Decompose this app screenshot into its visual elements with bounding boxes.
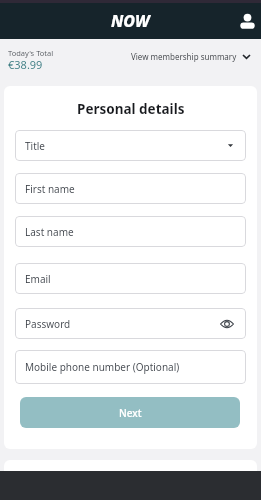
button[interactable]: Mobile phone number (Optional) xyxy=(15,350,246,384)
staticText: €38.99 xyxy=(8,57,43,72)
staticText: View membership summary xyxy=(131,51,237,62)
staticText: Password xyxy=(25,317,71,331)
button[interactable] xyxy=(239,12,255,28)
button[interactable]: Password xyxy=(15,308,246,339)
staticText: Email xyxy=(25,272,51,286)
button[interactable]: Last name xyxy=(15,216,246,247)
staticText: First name xyxy=(25,182,75,196)
button[interactable]: Email xyxy=(15,263,246,294)
button[interactable]: Title xyxy=(15,130,246,161)
button[interactable]: View membership summary xyxy=(131,51,251,62)
staticText: Today's Total xyxy=(8,48,54,58)
staticText: Next xyxy=(119,406,142,420)
staticText: NOW xyxy=(111,10,150,32)
button[interactable]: Next xyxy=(20,397,240,428)
staticText: Personal details xyxy=(77,100,185,118)
staticText: Title xyxy=(25,139,45,153)
button[interactable]: First name xyxy=(15,173,246,204)
staticText: Last name xyxy=(25,225,74,239)
staticText: Mobile phone number (Optional) xyxy=(25,360,180,374)
